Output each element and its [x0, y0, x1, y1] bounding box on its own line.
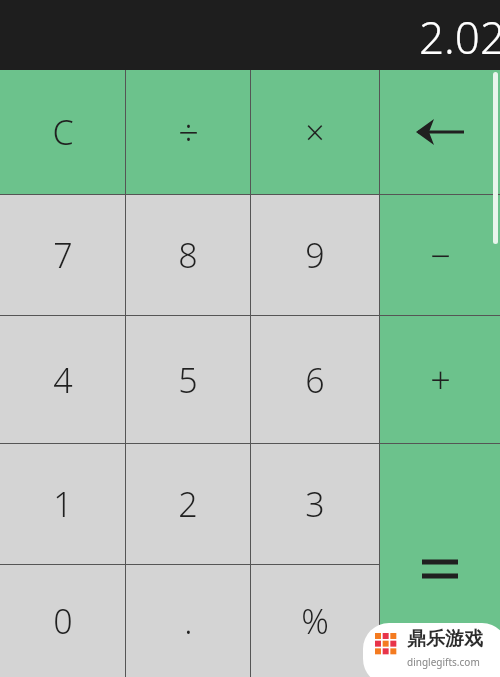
staticText: 2 [178, 481, 198, 527]
staticText: 5 [178, 357, 198, 403]
button[interactable]: 1 [0, 444, 125, 564]
staticText: C [52, 109, 74, 155]
button[interactable]: 6 [251, 316, 379, 443]
staticText: 8 [178, 232, 198, 278]
button[interactable]: 3 [251, 444, 379, 564]
staticText: + [430, 355, 451, 404]
staticText: 6 [305, 357, 325, 403]
staticText: dinglegifts.com [407, 655, 480, 669]
staticText: 鼎乐游戏 [407, 627, 483, 651]
staticText: % [301, 598, 329, 644]
button[interactable]: 7 [0, 195, 125, 315]
staticText: 7 [53, 232, 73, 278]
button[interactable]: 5 [126, 316, 250, 443]
staticText: 3 [305, 481, 325, 527]
button[interactable]: % [251, 565, 379, 677]
staticText: 2.02 [419, 7, 500, 67]
button[interactable]: Backspace [380, 70, 500, 194]
button[interactable]: ÷ [126, 70, 250, 194]
button[interactable]: 8 [126, 195, 250, 315]
button[interactable]: 2 [126, 444, 250, 564]
button[interactable]: + [380, 316, 500, 443]
staticText: × [305, 109, 325, 155]
staticText: 9 [305, 232, 325, 278]
button[interactable]: C [0, 70, 125, 194]
button[interactable]: 4 [0, 316, 125, 443]
button[interactable]: 0 [0, 565, 125, 677]
button[interactable]: × [251, 70, 379, 194]
staticText: 0 [53, 598, 73, 644]
staticText: − [430, 231, 451, 280]
staticText: ÷ [178, 108, 199, 157]
button[interactable]: Equals [380, 444, 500, 677]
staticText: 1 [53, 481, 73, 527]
button[interactable]: − [380, 195, 500, 315]
staticText: 4 [53, 357, 73, 403]
staticText: . [184, 598, 193, 644]
button[interactable]: 9 [251, 195, 379, 315]
button[interactable]: . [126, 565, 250, 677]
